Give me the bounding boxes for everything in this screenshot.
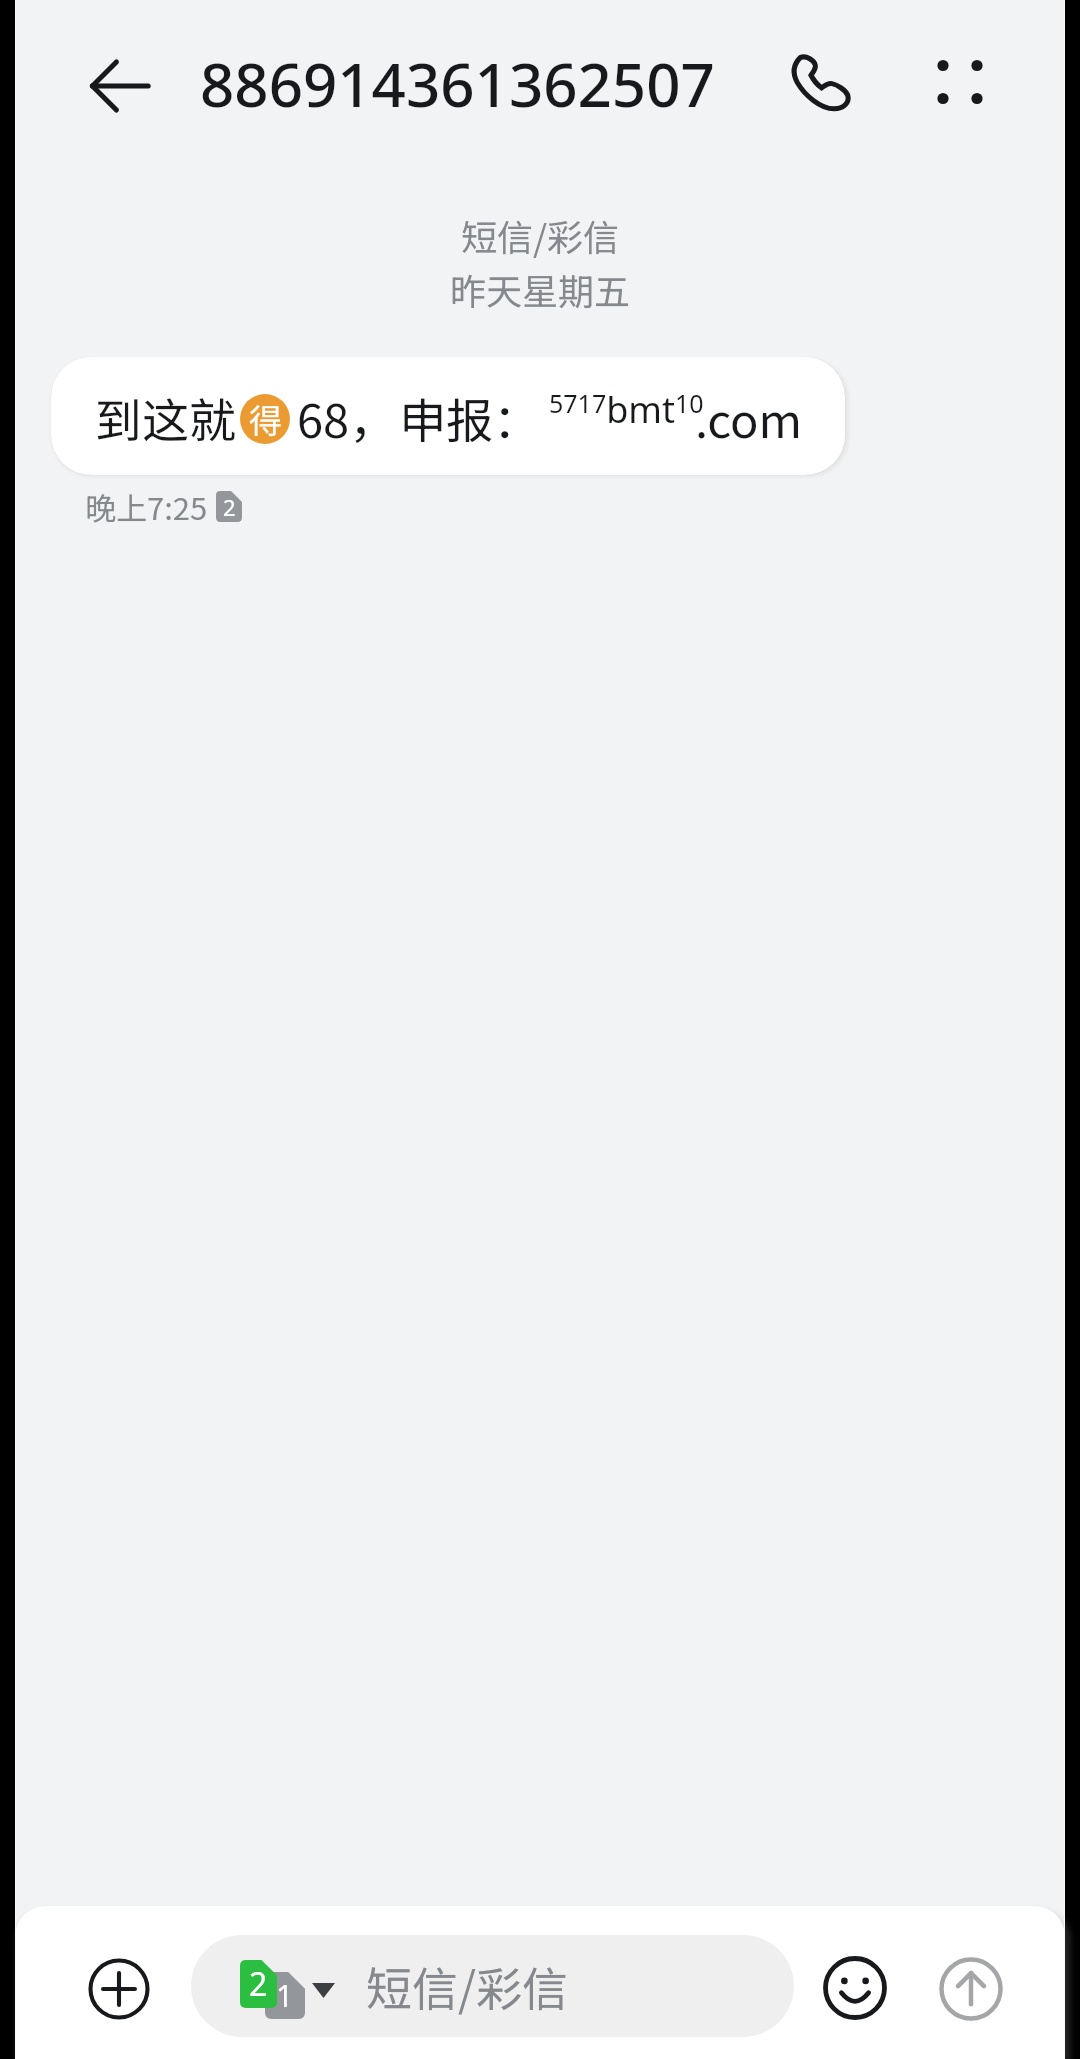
- button[interactable]: Back: [82, 48, 158, 124]
- staticText: 得: [249, 395, 282, 443]
- staticText: 到这就: [95, 383, 236, 451]
- staticText: 68，: [297, 383, 397, 451]
- staticText: 晚上7:25: [85, 484, 208, 529]
- staticText: 886914361362507: [200, 43, 715, 125]
- staticText: 1: [276, 1975, 294, 2016]
- staticText: 5717bmt10: [549, 385, 704, 434]
- staticText: 2: [249, 1962, 268, 2006]
- staticText: 短信/彩信: [461, 209, 620, 261]
- button[interactable]: Add attachment: [81, 1951, 157, 2027]
- staticText: 昨天星期五: [450, 263, 631, 315]
- button[interactable]: Emoji: [817, 1950, 893, 2026]
- button[interactable]: More options: [918, 40, 1002, 124]
- button[interactable]: 到这就: [51, 357, 845, 475]
- staticText: 申报：: [399, 383, 540, 451]
- button[interactable]: 1: [191, 1935, 794, 2037]
- staticText: .com: [695, 383, 803, 451]
- button[interactable]: Send: [933, 1951, 1009, 2027]
- staticText: 2: [223, 492, 236, 522]
- staticText: 短信/彩信: [366, 1953, 569, 2020]
- button[interactable]: Call: [776, 35, 866, 125]
